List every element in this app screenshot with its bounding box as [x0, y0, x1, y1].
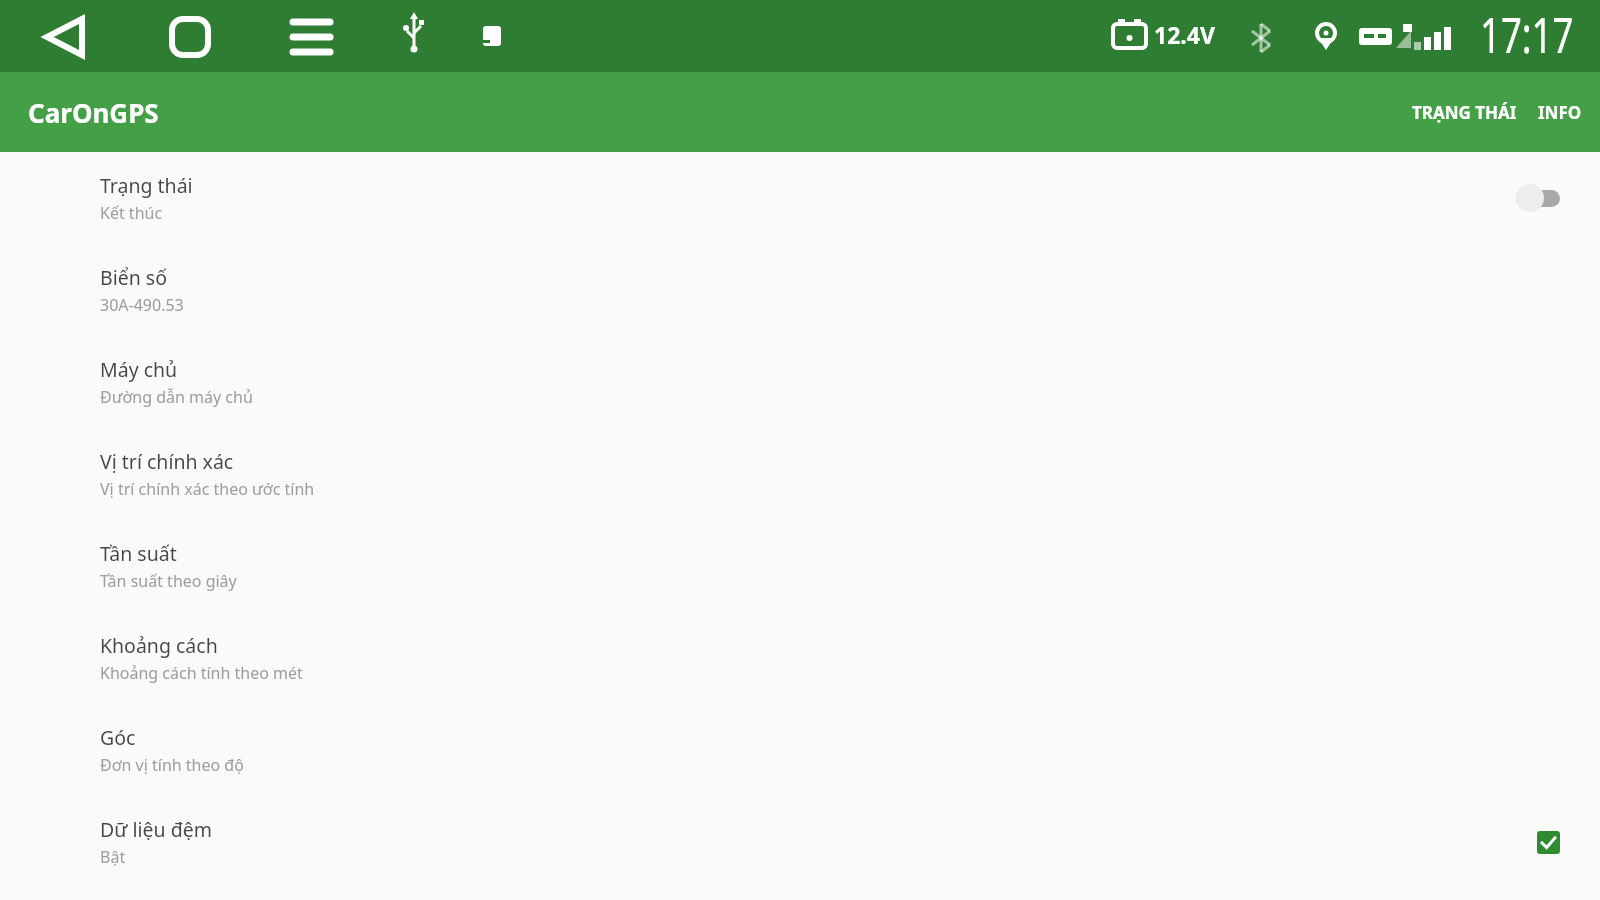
- staticText: Tần suất: [100, 540, 177, 567]
- staticText: 12.4V: [1154, 19, 1215, 50]
- staticText: Vị trí chính xác theo ước tính: [100, 478, 315, 500]
- button[interactable]: Máy chủ: [0, 336, 1600, 428]
- button[interactable]: Tần suất: [0, 520, 1600, 612]
- staticText: INFO: [1538, 101, 1582, 124]
- staticText: Bật: [100, 846, 126, 868]
- staticText: TRẠNG THÁI: [1412, 101, 1517, 124]
- staticText: Biển số: [100, 264, 167, 291]
- staticText: Tần suất theo giây: [100, 570, 237, 592]
- staticText: Khoảng cách: [100, 632, 218, 659]
- staticText: Trạng thái: [100, 172, 193, 199]
- button[interactable]: Biển số: [0, 244, 1600, 336]
- button[interactable]: Trạng thái: [0, 152, 1600, 244]
- staticText: Khoảng cách tính theo mét: [100, 662, 303, 684]
- staticText: CarOnGPS: [28, 95, 159, 130]
- staticText: Đơn vị tính theo độ: [100, 754, 244, 776]
- button[interactable]: INFO: [1528, 93, 1592, 132]
- staticText: Vị trí chính xác: [100, 448, 234, 475]
- staticText: 30A-490.53: [100, 294, 184, 316]
- staticText: Máy chủ: [100, 356, 178, 383]
- staticText: 17:17: [1480, 0, 1573, 68]
- staticText: Đường dẫn máy chủ: [100, 386, 253, 408]
- button[interactable]: Khoảng cách: [0, 612, 1600, 704]
- button[interactable]: Dữ liệu đệm: [0, 796, 1600, 888]
- button[interactable]: [1516, 184, 1560, 212]
- button[interactable]: TRẠNG THÁI: [1402, 93, 1527, 132]
- staticText: Góc: [100, 724, 136, 751]
- staticText: Dữ liệu đệm: [100, 816, 212, 843]
- button[interactable]: [1537, 831, 1560, 854]
- staticText: Kết thúc: [100, 202, 163, 224]
- button[interactable]: Góc: [0, 704, 1600, 796]
- button[interactable]: Vị trí chính xác: [0, 428, 1600, 520]
